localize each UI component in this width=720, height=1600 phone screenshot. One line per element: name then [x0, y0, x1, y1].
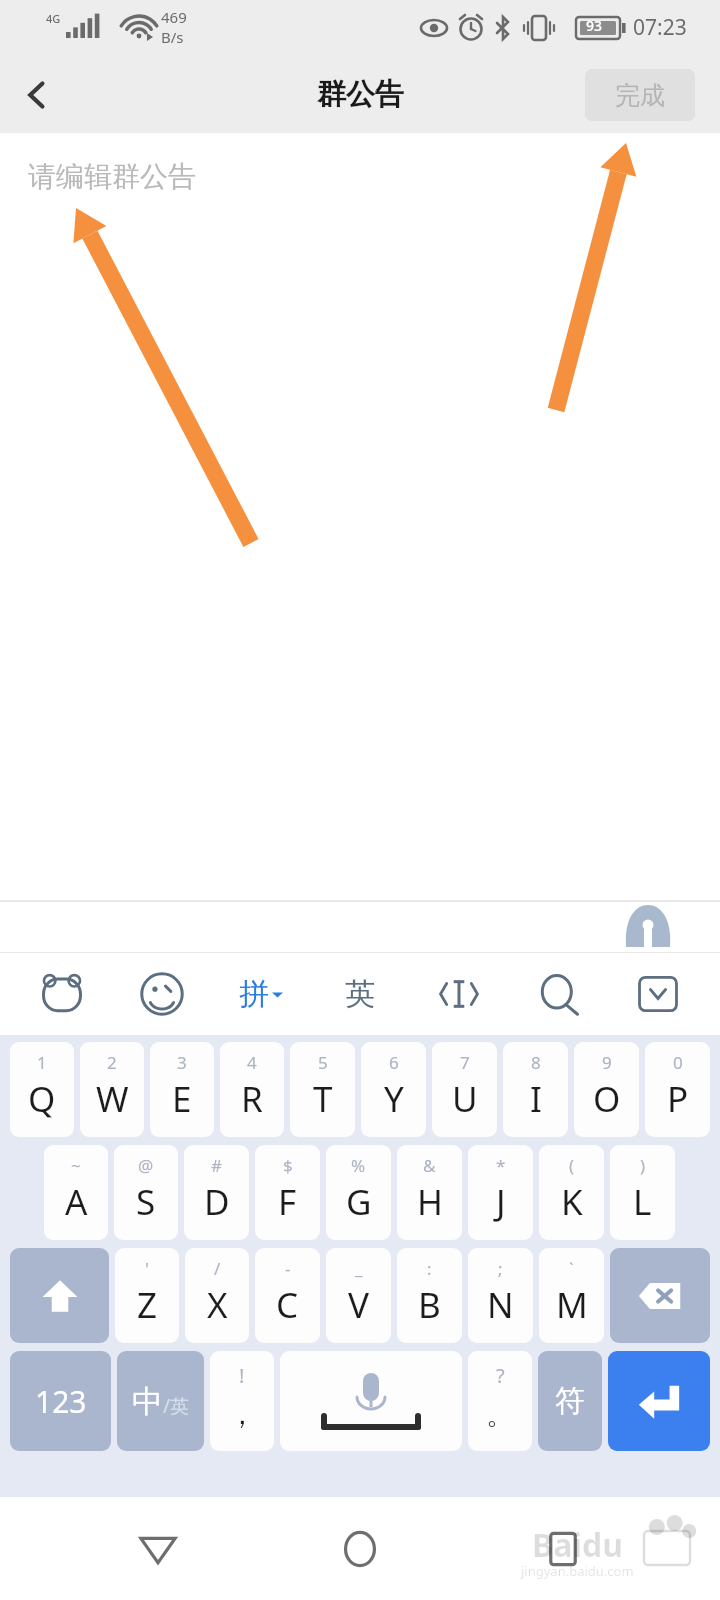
staticText: K [561, 1178, 583, 1226]
staticText: E [172, 1075, 192, 1123]
staticText: 拼 [239, 975, 269, 1013]
staticText: H [417, 1178, 443, 1226]
button[interactable]: Home [315, 1504, 405, 1594]
staticText: L [633, 1178, 652, 1226]
button[interactable]: ! [210, 1351, 274, 1451]
staticText: 07:23 [633, 13, 687, 42]
button[interactable]: 完成 [585, 69, 695, 121]
staticText: W [96, 1075, 129, 1123]
button[interactable]: Enter [608, 1351, 710, 1451]
staticText: V [348, 1281, 370, 1329]
staticText: I [530, 1075, 542, 1123]
staticText: R [241, 1075, 263, 1123]
button[interactable]: @ [114, 1145, 178, 1240]
staticText: M [556, 1281, 588, 1329]
staticText: 1 [37, 1051, 47, 1074]
button[interactable]: * [468, 1145, 533, 1240]
button[interactable]: Search [522, 957, 596, 1031]
button[interactable]: ? [468, 1351, 532, 1451]
button[interactable]: 4 [220, 1042, 284, 1137]
button[interactable]: Hide keyboard [621, 957, 695, 1031]
button[interactable]: 8 [503, 1042, 568, 1137]
staticText: 9 [602, 1051, 612, 1074]
staticText: & [423, 1154, 436, 1177]
staticText: ; [498, 1257, 503, 1280]
button[interactable]: ) [610, 1145, 675, 1240]
staticText: # [211, 1154, 222, 1177]
button[interactable]: 拼 [224, 957, 298, 1031]
staticText: 请编辑群公告 [28, 159, 196, 194]
button[interactable]: ' [115, 1248, 179, 1343]
staticText: $ [283, 1154, 293, 1177]
staticText: : [427, 1257, 432, 1280]
staticText: 群公告 [317, 76, 404, 113]
button[interactable]: 中 [117, 1351, 204, 1451]
button[interactable]: Emoji [125, 957, 199, 1031]
button[interactable]: ( [539, 1145, 604, 1240]
staticText: 7 [460, 1051, 470, 1074]
button[interactable]: 7 [432, 1042, 497, 1137]
staticText: B/s [161, 27, 184, 47]
staticText: 完成 [615, 80, 665, 111]
staticText: D [204, 1178, 230, 1226]
staticText: N [487, 1281, 514, 1329]
staticText: T [313, 1075, 333, 1123]
staticText: jingyan.baidu.com [521, 1562, 634, 1580]
staticText: S [136, 1178, 156, 1226]
button[interactable]: # [184, 1145, 249, 1240]
button[interactable]: ~ [44, 1145, 108, 1240]
button[interactable]: 6 [361, 1042, 426, 1137]
button[interactable]: & [397, 1145, 462, 1240]
button[interactable]: - [255, 1248, 320, 1343]
button[interactable]: Move cursor [422, 957, 496, 1031]
staticText: 。 [486, 1397, 514, 1432]
staticText: ， [228, 1397, 256, 1432]
staticText: 4G [46, 11, 61, 26]
button[interactable]: Baidu input [25, 957, 99, 1031]
button[interactable]: 英 [323, 957, 397, 1031]
staticText: 英 [345, 975, 375, 1013]
button[interactable]: 3 [150, 1042, 214, 1137]
staticText: _ [355, 1257, 363, 1280]
button[interactable]: : [397, 1248, 462, 1343]
staticText: 0 [673, 1051, 683, 1074]
staticText: J [496, 1178, 506, 1226]
button[interactable]: Recents [518, 1504, 608, 1594]
staticText: Z [137, 1281, 158, 1329]
button[interactable]: ; [468, 1248, 533, 1343]
button[interactable]: _ [326, 1248, 391, 1343]
button[interactable]: 请编辑群公告 [0, 133, 720, 901]
staticText: P [667, 1075, 689, 1123]
button[interactable]: 0 [645, 1042, 710, 1137]
staticText: 5 [318, 1051, 328, 1074]
button[interactable]: ` [539, 1248, 604, 1343]
button[interactable]: 123 [10, 1351, 111, 1451]
staticText: Baidu [532, 1523, 624, 1567]
staticText: O [593, 1075, 621, 1123]
button[interactable]: 5 [290, 1042, 355, 1137]
button[interactable]: 9 [574, 1042, 639, 1137]
staticText: 4 [247, 1051, 257, 1074]
button[interactable]: 2 [80, 1042, 144, 1137]
staticText: 469 [161, 7, 187, 27]
button[interactable]: % [326, 1145, 391, 1240]
staticText: ! [239, 1362, 245, 1389]
button[interactable]: 符 [538, 1351, 602, 1451]
staticText: Y [384, 1075, 404, 1123]
button[interactable]: 1 [10, 1042, 74, 1137]
staticText: C [276, 1281, 299, 1329]
staticText: U [452, 1075, 478, 1123]
staticText: ( [569, 1154, 575, 1177]
staticText: A [65, 1178, 88, 1226]
button[interactable]: / [185, 1248, 249, 1343]
button[interactable]: Delete [610, 1248, 710, 1343]
button[interactable]: Shift [10, 1248, 109, 1343]
button[interactable]: Back [0, 58, 74, 132]
button[interactable]: $ [255, 1145, 320, 1240]
staticText: 中 [132, 1382, 163, 1421]
staticText: ? [496, 1362, 505, 1389]
staticText: 6 [389, 1051, 399, 1074]
button[interactable]: Space [280, 1351, 462, 1451]
staticText: /英 [163, 1393, 190, 1419]
button[interactable]: Back [113, 1504, 203, 1594]
